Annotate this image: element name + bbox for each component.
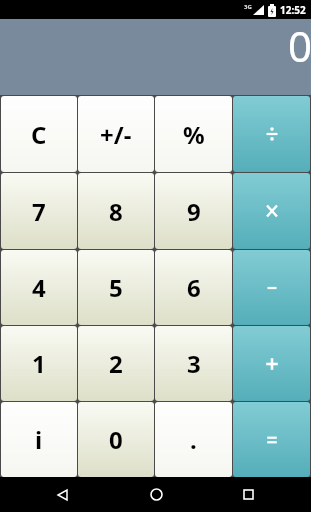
button[interactable]: 6 [155, 250, 232, 325]
button[interactable] [233, 173, 310, 249]
button[interactable]: +/- [78, 96, 154, 172]
button[interactable]: % [155, 96, 232, 172]
button[interactable] [228, 477, 268, 512]
button[interactable]: 5 [78, 250, 154, 325]
staticText: 5 [109, 271, 123, 304]
staticText: . [190, 423, 197, 456]
staticText: 6 [187, 271, 201, 304]
staticText: C [31, 118, 47, 151]
staticText: 1 [32, 347, 46, 380]
button[interactable]: 8 [78, 173, 154, 249]
staticText: i [35, 423, 43, 456]
staticText: % [183, 118, 205, 151]
button[interactable] [233, 250, 310, 325]
button[interactable]: 0 [78, 402, 154, 477]
staticText: 7 [32, 195, 46, 228]
staticText: 8 [109, 195, 123, 228]
button[interactable]: 9 [155, 173, 232, 249]
button[interactable] [136, 477, 176, 512]
button[interactable]: 3 [155, 326, 232, 401]
staticText: 2 [109, 347, 123, 380]
staticText: 12:52 [280, 3, 306, 17]
button[interactable] [233, 96, 310, 172]
staticText: 3G [244, 3, 252, 11]
button[interactable] [233, 326, 310, 401]
staticText: 0 [288, 17, 311, 74]
staticText: 3 [187, 347, 201, 380]
staticText: 0 [109, 423, 123, 456]
button[interactable]: . [155, 402, 232, 477]
button[interactable]: 1 [1, 326, 77, 401]
staticText: 4 [32, 271, 46, 304]
button[interactable] [233, 402, 310, 477]
staticText: +/- [100, 118, 132, 151]
button[interactable] [42, 477, 82, 512]
button[interactable]: 7 [1, 173, 77, 249]
button[interactable]: 2 [78, 326, 154, 401]
button[interactable]: C [1, 96, 77, 172]
staticText: 9 [187, 195, 201, 228]
button[interactable]: 4 [1, 250, 77, 325]
button[interactable]: i [1, 402, 77, 477]
